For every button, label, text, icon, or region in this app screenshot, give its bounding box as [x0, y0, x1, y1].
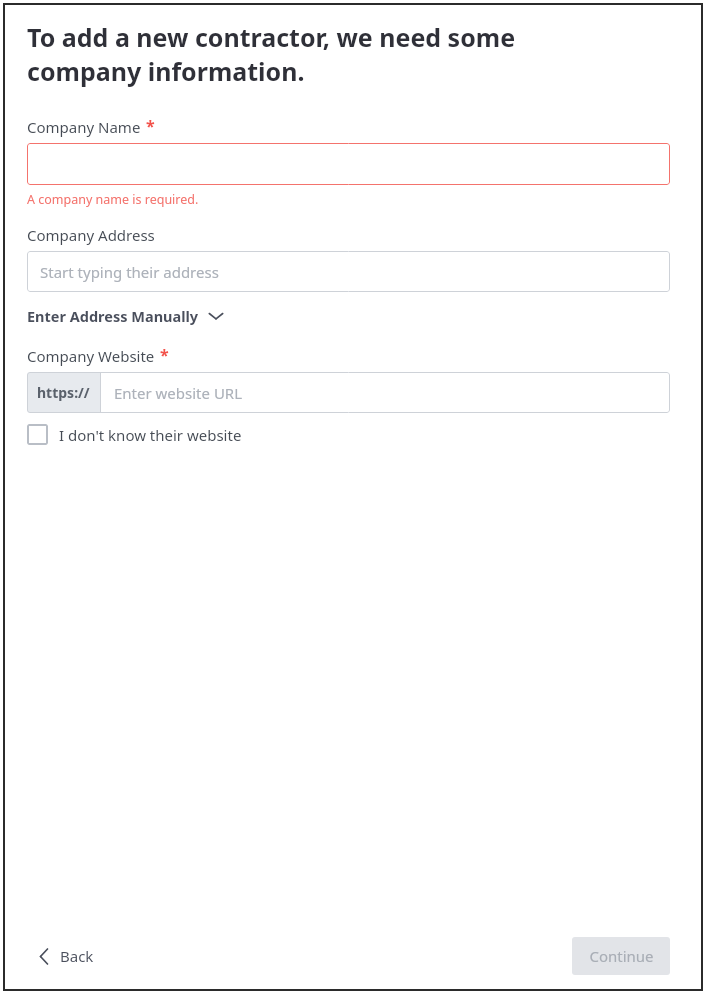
staticText: Start typing their address — [40, 262, 219, 282]
staticText: Enter Address Manually — [27, 306, 199, 326]
staticText: Company Name — [27, 117, 141, 137]
staticText: Company Address — [27, 225, 155, 245]
staticText: I don't know their website — [59, 425, 242, 445]
staticText: Enter website URL — [114, 383, 243, 403]
staticText: Company Website — [27, 346, 155, 366]
staticText: https:// — [37, 383, 90, 402]
staticText: Back — [60, 946, 94, 966]
button[interactable]: Enter Address Manually — [27, 306, 224, 326]
button[interactable]: https:// — [27, 372, 670, 413]
button[interactable]: I don't know their website — [27, 424, 242, 445]
staticText: * — [146, 115, 155, 137]
staticText: * — [160, 344, 169, 366]
staticText: company information. — [27, 54, 305, 88]
button[interactable] — [27, 143, 670, 185]
button[interactable]: Start typing their address — [27, 251, 670, 292]
staticText: To add a new contractor, we need some — [27, 20, 516, 54]
button[interactable]: Back — [27, 938, 106, 974]
button[interactable]: Continue — [572, 937, 670, 975]
staticText: A company name is required. — [27, 191, 199, 208]
staticText: Continue — [589, 946, 654, 966]
